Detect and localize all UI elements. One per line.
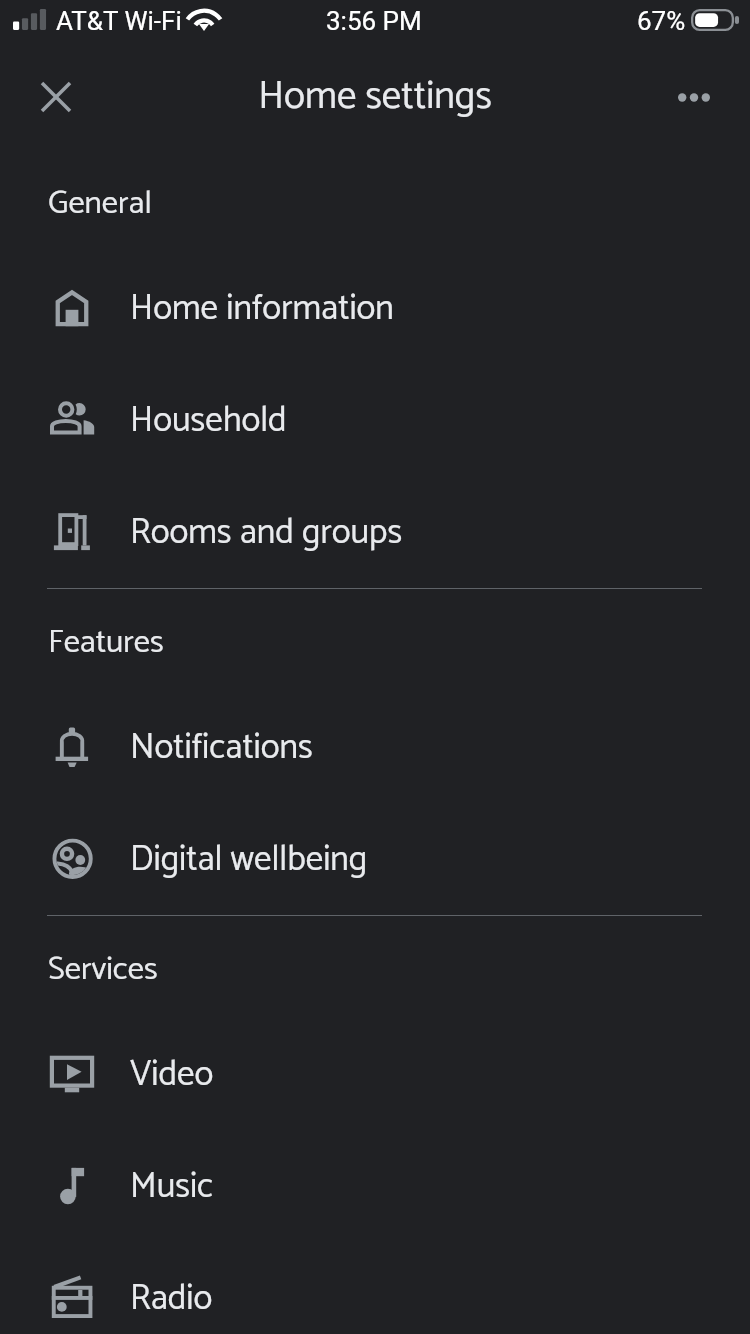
button[interactable]: Music	[0, 1130, 750, 1242]
staticText: Digital wellbeing	[130, 831, 368, 888]
button[interactable]: Rooms and groups	[0, 476, 750, 588]
staticText: Features	[48, 616, 164, 669]
button[interactable]: Household	[0, 364, 750, 476]
staticText: Home settings	[258, 65, 492, 129]
button[interactable]: Radio	[0, 1242, 750, 1334]
staticText: Rooms and groups	[130, 504, 403, 561]
staticText: 67%	[637, 6, 686, 36]
staticText: AT&T Wi-Fi	[56, 6, 182, 36]
button[interactable]: More options	[658, 61, 730, 133]
staticText: Radio	[130, 1270, 213, 1327]
staticText: Household	[130, 392, 287, 449]
staticText: Home information	[130, 280, 394, 337]
button[interactable]: Home information	[0, 252, 750, 364]
button[interactable]: Close	[20, 61, 92, 133]
button[interactable]: Notifications	[0, 691, 750, 803]
button[interactable]: Digital wellbeing	[0, 803, 750, 915]
staticText: Notifications	[130, 719, 313, 776]
staticText: Video	[130, 1046, 214, 1103]
staticText: 3:56 PM	[326, 6, 422, 36]
button[interactable]: Video	[0, 1018, 750, 1130]
staticText: General	[48, 177, 152, 230]
staticText: Music	[130, 1158, 214, 1215]
staticText: Services	[48, 943, 158, 996]
